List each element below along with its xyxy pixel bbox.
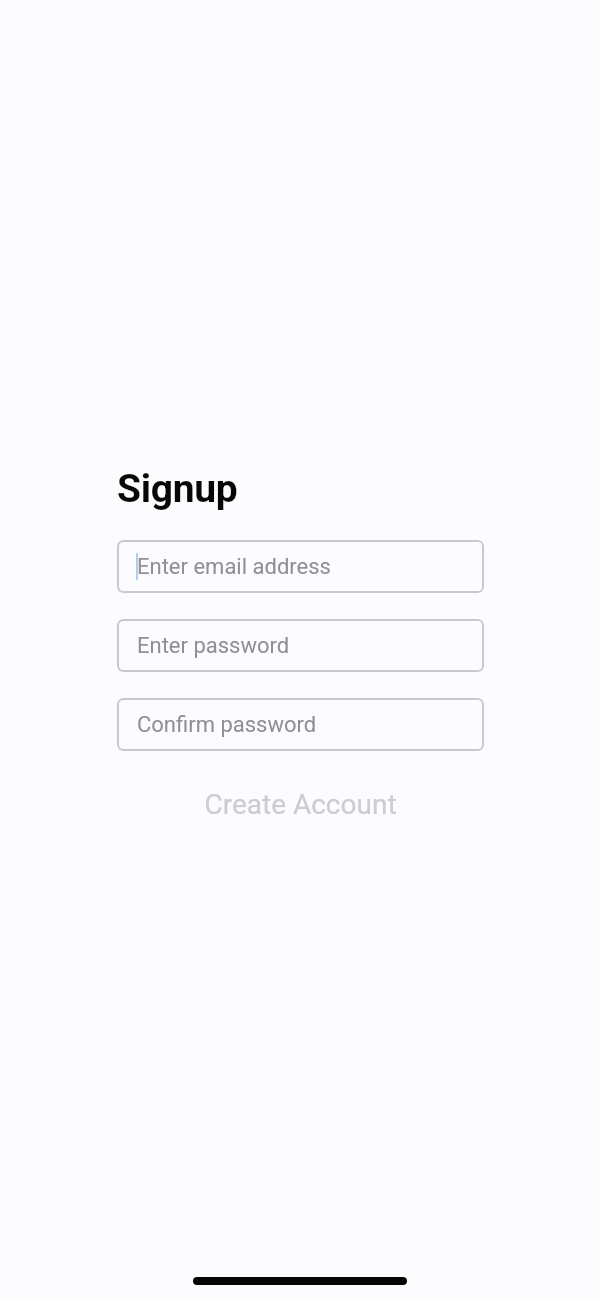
button[interactable]: Enter email address bbox=[117, 540, 484, 593]
button[interactable]: Enter password bbox=[117, 619, 484, 672]
staticText: Create Account bbox=[204, 788, 397, 821]
button[interactable]: Confirm password bbox=[117, 698, 484, 751]
staticText: Enter password bbox=[137, 633, 290, 659]
button[interactable]: Create Account bbox=[117, 767, 484, 842]
staticText: Signup bbox=[117, 466, 238, 512]
other: Home indicator bbox=[193, 1277, 407, 1285]
staticText: Confirm password bbox=[137, 712, 317, 738]
staticText: Enter email address bbox=[137, 554, 331, 580]
